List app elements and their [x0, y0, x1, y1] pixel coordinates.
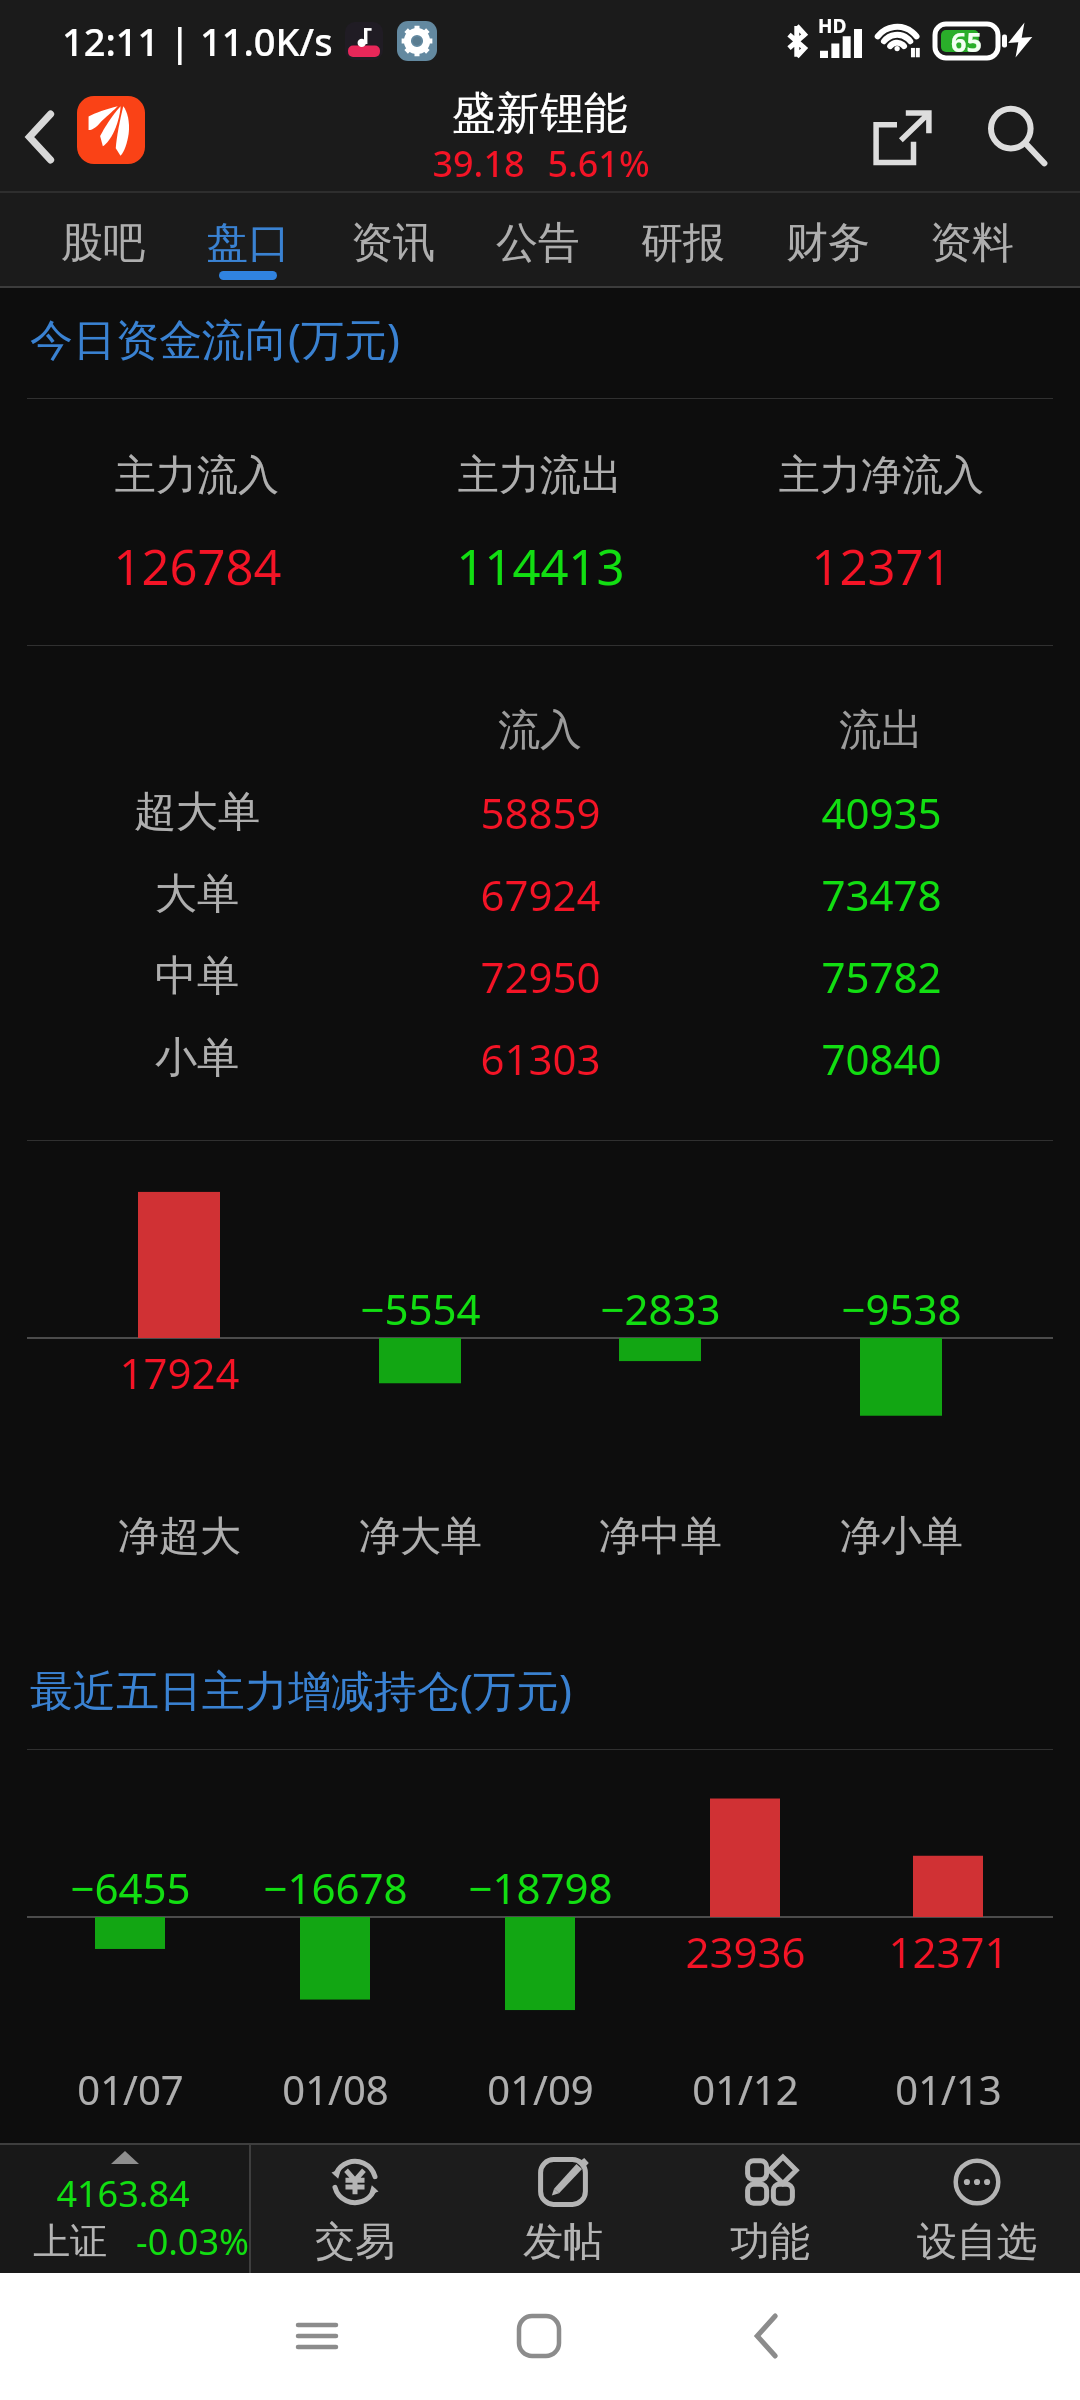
button[interactable]: 4163.84: [0, 2143, 249, 2273]
staticText: −18798: [468, 1859, 613, 1916]
staticText: 5.61%: [547, 139, 650, 188]
staticText: 资料: [930, 217, 1014, 270]
staticText: 公告: [496, 217, 580, 270]
staticText: 股吧: [61, 217, 145, 270]
staticText: 4163.84: [56, 2169, 190, 2218]
staticText: 大单: [155, 868, 239, 921]
staticText: 58859: [480, 784, 601, 841]
staticText: 财务: [786, 217, 870, 270]
staticText: 主力净流入: [779, 450, 984, 502]
staticText: −16678: [263, 1859, 408, 1916]
staticText: 设自选: [917, 2216, 1037, 2262]
staticText: −2833: [600, 1280, 721, 1337]
button[interactable]: 财务: [756, 191, 900, 288]
staticText: 研报: [641, 217, 725, 270]
staticText: 主力流入: [115, 450, 279, 502]
staticText: -0.03%: [136, 2217, 249, 2266]
button[interactable]: 发帖: [459, 2143, 666, 2273]
staticText: 01/12: [692, 2062, 799, 2116]
staticText: 01/09: [487, 2062, 594, 2116]
staticText: 流出: [839, 704, 923, 757]
staticText: 小单: [155, 1032, 239, 1085]
staticText: 126784: [113, 533, 282, 600]
staticText: 67924: [480, 866, 601, 923]
staticText: 39.18: [432, 139, 525, 188]
button[interactable]: 交易: [251, 2143, 459, 2273]
staticText: 114413: [456, 533, 625, 600]
staticText: 净小单: [840, 1511, 963, 1563]
staticText: 73478: [821, 866, 942, 923]
staticText: 01/13: [895, 2062, 1002, 2116]
staticText: HD: [818, 13, 847, 39]
button[interactable]: Back: [0, 82, 80, 192]
staticText: 中单: [155, 950, 239, 1003]
staticText: −9538: [841, 1280, 962, 1337]
staticText: 功能: [730, 2216, 810, 2262]
staticText: 今日资金流向(万元): [30, 309, 400, 368]
staticText: 61303: [480, 1030, 601, 1087]
staticText: 40935: [821, 784, 942, 841]
button[interactable]: Search: [970, 87, 1066, 187]
staticText: 超大单: [134, 786, 260, 839]
staticText: 资讯: [351, 217, 435, 270]
staticText: 12371: [888, 1923, 1009, 1980]
button[interactable]: 股吧: [31, 191, 175, 288]
button[interactable]: 资料: [900, 191, 1044, 288]
staticText: 01/07: [77, 2062, 184, 2116]
button[interactable]: 设自选: [873, 2143, 1080, 2273]
staticText: 01/08: [282, 2062, 389, 2116]
staticText: −6455: [70, 1859, 191, 1916]
staticText: 盘口: [206, 217, 290, 270]
button[interactable]: Home: [499, 2296, 579, 2376]
button[interactable]: Back: [726, 2296, 806, 2376]
staticText: 23936: [685, 1923, 806, 1980]
staticText: 12371: [811, 533, 952, 600]
button[interactable]: Share: [854, 87, 950, 187]
staticText: 净中单: [599, 1511, 722, 1563]
button[interactable]: 资讯: [321, 191, 465, 288]
staticText: −5554: [360, 1280, 481, 1337]
staticText: 65: [951, 23, 982, 59]
staticText: 最近五日主力增减持仓(万元): [30, 1660, 572, 1719]
staticText: 上证: [33, 2218, 107, 2265]
staticText: 盛新锂能: [452, 86, 628, 141]
staticText: 主力流出: [458, 450, 622, 502]
staticText: 17924: [119, 1344, 240, 1401]
button[interactable]: 研报: [611, 191, 755, 288]
staticText: 交易: [315, 2216, 395, 2262]
button[interactable]: 功能: [666, 2143, 873, 2273]
staticText: 发帖: [523, 2216, 603, 2262]
staticText: 流入: [498, 704, 582, 757]
button[interactable]: 盘口: [176, 191, 320, 288]
button[interactable]: 公告: [466, 191, 610, 288]
staticText: 75782: [821, 948, 942, 1005]
staticText: 12:11 | 11.0K/s: [62, 15, 333, 67]
staticText: 净超大: [118, 1511, 241, 1563]
staticText: 净大单: [359, 1511, 482, 1563]
staticText: 70840: [821, 1030, 942, 1087]
button[interactable]: Recents: [277, 2296, 357, 2376]
staticText: 72950: [480, 948, 601, 1005]
button[interactable]: Eastmoney: [77, 96, 145, 164]
